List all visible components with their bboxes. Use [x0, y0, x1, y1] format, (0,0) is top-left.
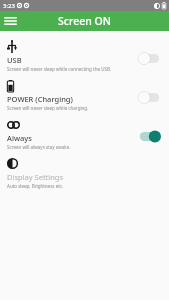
- button[interactable]: Toggle POWER (Charging): [136, 90, 162, 105]
- staticText: Screen will never sleep while charging.: [7, 105, 89, 111]
- staticText: 3:23: [3, 2, 15, 10]
- staticText: POWER (Charging): [7, 94, 73, 104]
- button[interactable]: POWER (Charging): [0, 74, 169, 113]
- staticText: Screen will always stay awake.: [7, 144, 71, 150]
- button[interactable]: Open navigation menu: [0, 11, 20, 31]
- staticText: Auto sleep, Brightness etc.: [7, 183, 64, 189]
- staticText: Screen will never sleep while connecting…: [7, 66, 111, 72]
- staticText: Display Settings: [7, 172, 64, 182]
- button[interactable]: USB: [0, 35, 169, 74]
- button[interactable]: Display Settings: [0, 152, 169, 191]
- staticText: Always: [7, 133, 32, 143]
- staticText: USB: [7, 55, 22, 65]
- button[interactable]: Toggle Always: [136, 129, 162, 144]
- staticText: Screen ON: [58, 14, 111, 28]
- button[interactable]: Always: [0, 113, 169, 152]
- button[interactable]: Toggle USB: [136, 51, 162, 66]
